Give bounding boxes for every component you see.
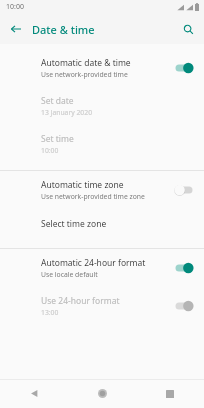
button[interactable]: Select time zone [0,209,204,239]
staticText: 10:00 [6,2,24,12]
button[interactable]: Back [0,379,68,408]
staticText: 13 January 2020 [41,108,93,117]
staticText: 13:00 [41,308,59,317]
staticText: Date & time [32,22,95,37]
button[interactable]: On [172,260,196,276]
button[interactable]: Back [5,18,27,40]
button[interactable]: Off [172,182,196,198]
staticText: Set date [41,95,74,107]
staticText: Automatic date & time [41,57,131,69]
button[interactable]: Use 24-hour format [0,287,204,325]
button[interactable]: Automatic date & time [0,49,204,87]
staticText: Set time [41,133,74,145]
staticText: Select time zone [41,218,107,230]
staticText: Use 24-hour format [41,295,120,307]
staticText: Automatic 24-hour format [41,257,146,269]
button[interactable]: Automatic 24-hour format [0,249,204,287]
button[interactable]: Set time [0,125,204,163]
staticText: Use network-provided time [41,70,128,79]
button[interactable]: Set date [0,87,204,125]
staticText: Automatic time zone [41,179,124,191]
staticText: Use locale default [41,270,98,279]
button[interactable]: Automatic time zone [0,171,204,209]
button[interactable]: Recent apps [136,379,204,408]
staticText: 10:00 [41,146,59,155]
button[interactable]: On [172,60,196,76]
button[interactable]: Search [177,18,199,40]
staticText: Use network-provided time zone [41,192,145,201]
button[interactable]: Home [68,379,136,408]
button[interactable]: On [172,298,196,314]
